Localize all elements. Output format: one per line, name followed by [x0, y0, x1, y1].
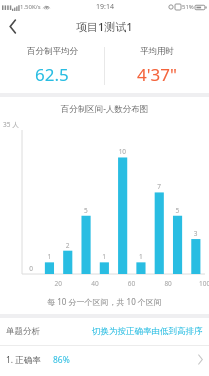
staticText: 1. 正确率	[6, 354, 41, 366]
button[interactable]: 单题分析	[6, 326, 40, 337]
staticText: 35 人	[3, 120, 19, 129]
staticText: 项目1测试1	[76, 19, 133, 34]
staticText: 86%	[53, 354, 70, 366]
staticText: 4'37"	[137, 63, 177, 86]
staticText: 百分制平均分	[27, 46, 78, 57]
staticText: 百分制区间-人数分布图	[0, 103, 209, 115]
staticText: 单题分析	[6, 326, 40, 337]
staticText: 62.5	[35, 63, 69, 86]
button[interactable]: 1. 正确率	[0, 346, 209, 373]
button[interactable]: 切换为按正确率由低到高排序	[92, 326, 203, 337]
button[interactable]: Back	[0, 14, 26, 39]
staticText: 平均用时	[140, 46, 174, 57]
staticText: 每 10 分一个区间，共 10 个区间	[0, 296, 209, 307]
staticText: 切换为按正确率由低到高排序	[92, 326, 203, 337]
button[interactable]: 百分制平均分	[0, 39, 104, 93]
staticText: 1.50K/s	[20, 3, 41, 11]
staticText: 19:14	[96, 2, 114, 12]
button[interactable]: 平均用时	[105, 39, 209, 93]
staticText: 51%	[182, 3, 194, 11]
